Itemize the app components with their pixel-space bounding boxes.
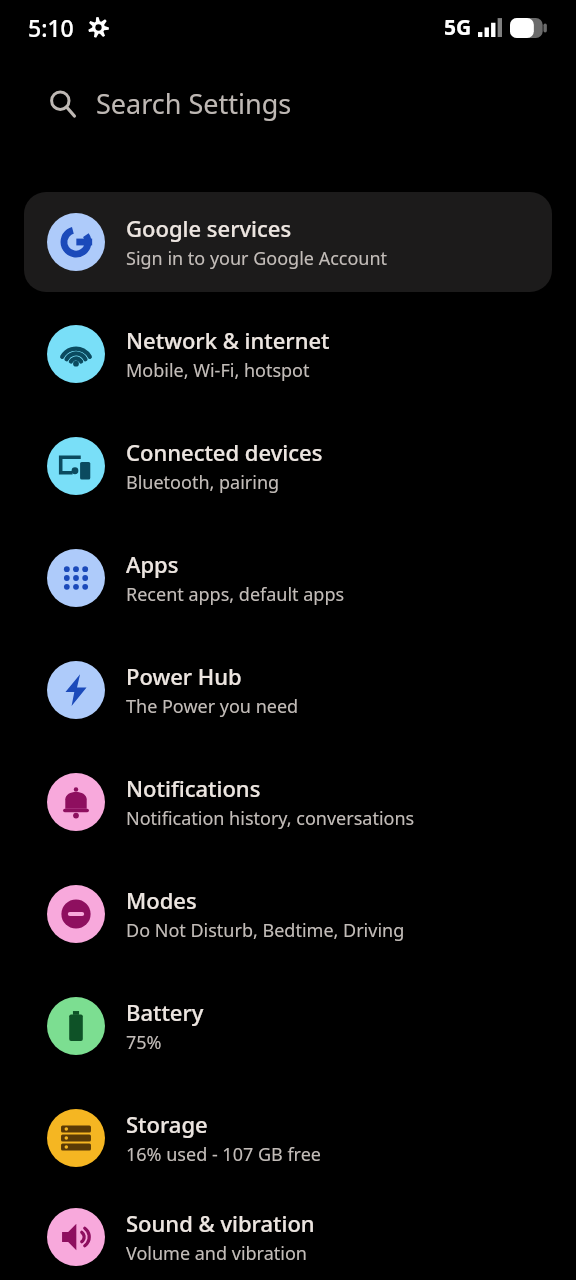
staticText: Mobile, Wi-Fi, hotspot: [126, 358, 310, 383]
staticText: Notification history, conversations: [126, 806, 415, 831]
staticText: Google services: [126, 213, 292, 243]
button[interactable]: Modes: [0, 858, 576, 970]
button[interactable]: Connected devices: [0, 410, 576, 522]
button[interactable]: Search: [0, 55, 576, 152]
staticText: Notifications: [126, 773, 261, 803]
button[interactable]: Network & internet: [0, 298, 576, 410]
staticText: Battery: [126, 997, 204, 1027]
staticText: Apps: [126, 549, 179, 579]
staticText: Search Settings: [96, 85, 292, 122]
staticText: Connected devices: [126, 437, 323, 467]
button[interactable]: Google services: [24, 192, 552, 292]
staticText: Network & internet: [126, 325, 330, 355]
staticText: Modes: [126, 885, 197, 915]
staticText: Recent apps, default apps: [126, 582, 345, 607]
staticText: Sign in to your Google Account: [126, 246, 388, 271]
button[interactable]: Power Hub: [0, 634, 576, 746]
button[interactable]: Notifications: [0, 746, 576, 858]
staticText: Sound & vibration: [126, 1208, 315, 1238]
staticText: 16% used - 107 GB free: [126, 1142, 321, 1167]
staticText: Volume and vibration: [126, 1241, 307, 1266]
staticText: Bluetooth, pairing: [126, 470, 280, 495]
staticText: Do Not Disturb, Bedtime, Driving: [126, 918, 405, 943]
staticText: 75%: [126, 1030, 162, 1055]
staticText: 5G: [444, 13, 472, 42]
button[interactable]: Storage: [0, 1082, 576, 1194]
button[interactable]: Sound & vibration: [0, 1194, 576, 1280]
staticText: Power Hub: [126, 661, 242, 691]
staticText: Storage: [126, 1109, 208, 1139]
staticText: The Power you need: [126, 694, 299, 719]
other: Search: [48, 89, 78, 119]
staticText: 5:10: [28, 12, 74, 43]
button[interactable]: Battery: [0, 970, 576, 1082]
button[interactable]: Apps: [0, 522, 576, 634]
